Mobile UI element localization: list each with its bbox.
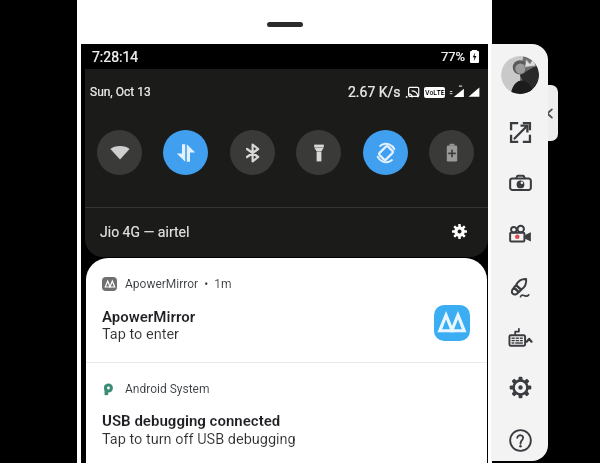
button[interactable]: Record screen — [505, 219, 535, 249]
button[interactable]: Screenshot — [505, 168, 535, 198]
button[interactable]: Auto-rotate — [363, 130, 408, 175]
button[interactable]: Mobile data — [163, 130, 208, 175]
button[interactable]: Bluetooth — [230, 130, 275, 175]
button[interactable]: Keyboard — [505, 322, 535, 352]
button[interactable]: Flashlight — [296, 130, 341, 175]
button[interactable]: Jio 4G — airtel — [100, 208, 472, 257]
button[interactable]: Collapse panel — [540, 85, 558, 141]
button[interactable]: Fullscreen — [505, 117, 535, 147]
staticText: 77% — [441, 49, 466, 64]
staticText: Android System — [125, 382, 210, 396]
button[interactable]: Settings — [446, 218, 472, 244]
staticText: Sun, Oct 13 — [90, 85, 151, 99]
staticText: 2.67 K/s — [348, 84, 401, 100]
staticText: Jio 4G — airtel — [100, 224, 190, 240]
button[interactable]: Whiteboard — [505, 272, 535, 302]
button[interactable]: Wi-Fi — [97, 130, 142, 175]
button[interactable]: Help — [505, 425, 535, 455]
staticText: ApowerMirror • 1m — [125, 277, 232, 291]
staticText: ApowerMirror — [102, 308, 196, 326]
staticText: 7:28:14 — [92, 49, 139, 65]
button[interactable]: Settings — [505, 372, 535, 402]
button[interactable]: ApowerMirror • 1m — [86, 258, 487, 362]
button[interactable]: Battery saver — [429, 130, 474, 175]
staticText: USB debugging connected — [102, 412, 281, 430]
button[interactable]: Profile — [501, 56, 539, 94]
staticText: Tap to turn off USB debugging — [102, 431, 296, 448]
staticText: VoLTE — [425, 89, 445, 97]
button[interactable]: Android System — [86, 363, 487, 463]
staticText: Tap to enter — [102, 326, 179, 343]
